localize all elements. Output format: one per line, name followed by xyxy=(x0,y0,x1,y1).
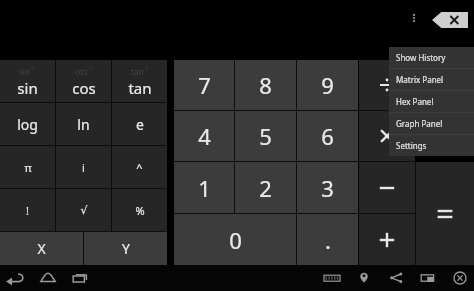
button[interactable]: Matrix Panel xyxy=(389,69,474,90)
button[interactable]: X xyxy=(0,232,83,265)
staticText: 4 xyxy=(198,121,211,151)
button[interactable]: 2 xyxy=(235,162,296,213)
button[interactable]: Settings xyxy=(389,135,474,156)
button[interactable]: Close xyxy=(450,268,470,288)
staticText: sin-1 xyxy=(19,65,36,77)
staticText: ! xyxy=(26,203,29,218)
button[interactable]: √ xyxy=(56,189,111,231)
button[interactable]: ! xyxy=(0,189,55,231)
staticText: log xyxy=(17,115,38,134)
button[interactable]: i xyxy=(56,146,111,188)
staticText: ^ xyxy=(136,160,143,175)
staticText: Matrix Panel xyxy=(396,74,444,85)
staticText: 8 xyxy=(259,70,272,100)
button[interactable]: Plus xyxy=(359,214,415,265)
button[interactable]: sin-1 xyxy=(0,60,55,102)
staticText: tan xyxy=(128,78,152,98)
button[interactable]: Divide xyxy=(359,60,415,110)
button[interactable]: π xyxy=(0,146,55,188)
button[interactable]: e xyxy=(112,103,167,145)
button[interactable]: 7 xyxy=(174,60,234,110)
button[interactable]: Back xyxy=(6,268,26,288)
staticText: Y xyxy=(122,239,130,258)
button[interactable]: Recent apps xyxy=(70,268,90,288)
button[interactable]: Graph Panel xyxy=(389,113,474,134)
button[interactable]: Keyboard xyxy=(322,268,342,288)
button[interactable]: ln xyxy=(56,103,111,145)
button[interactable]: 0 xyxy=(174,214,296,265)
staticText: Graph Panel xyxy=(396,118,443,129)
button[interactable]: log xyxy=(0,103,55,145)
staticText: 3 xyxy=(321,173,334,203)
button[interactable]: 9 xyxy=(297,60,358,110)
button[interactable]: 4 xyxy=(174,111,234,161)
staticText: tan-1 xyxy=(131,65,149,77)
staticText: . xyxy=(325,225,331,255)
button[interactable]: Share xyxy=(386,268,406,288)
staticText: π xyxy=(24,160,32,175)
button[interactable]: Minus xyxy=(359,162,415,213)
staticText: % xyxy=(135,203,145,218)
button[interactable]: Cast screen xyxy=(418,268,438,288)
button[interactable]: Show History xyxy=(389,47,474,68)
button[interactable]: More options xyxy=(404,8,424,28)
button[interactable]: 3 xyxy=(297,162,358,213)
staticText: ln xyxy=(77,115,90,134)
button[interactable]: Home xyxy=(38,268,58,288)
staticText: Settings xyxy=(396,140,427,151)
button[interactable]: 1 xyxy=(174,162,234,213)
button[interactable]: Y xyxy=(84,232,167,265)
button[interactable]: 5 xyxy=(235,111,296,161)
button[interactable]: Multiply xyxy=(359,111,415,161)
staticText: X xyxy=(37,239,46,258)
button[interactable]: Location xyxy=(354,268,374,288)
staticText: i xyxy=(82,160,85,175)
staticText: 2 xyxy=(259,173,272,203)
button[interactable]: 8 xyxy=(235,60,296,110)
button[interactable]: ^ xyxy=(112,146,167,188)
staticText: e xyxy=(136,115,144,134)
button[interactable]: 6 xyxy=(297,111,358,161)
button[interactable]: . xyxy=(297,214,358,265)
staticText: cos-1 xyxy=(75,65,93,77)
button[interactable]: tan-1 xyxy=(112,60,167,102)
staticText: 0 xyxy=(229,225,242,255)
button[interactable]: % xyxy=(112,189,167,231)
button[interactable]: Equals xyxy=(416,162,474,265)
staticText: Show History xyxy=(396,52,446,63)
staticText: 6 xyxy=(321,121,334,151)
staticText: cos xyxy=(72,78,96,98)
staticText: Hex Panel xyxy=(396,96,434,107)
button[interactable]: cos-1 xyxy=(56,60,111,102)
staticText: 1 xyxy=(198,173,211,203)
staticText: sin xyxy=(17,78,38,98)
staticText: 5 xyxy=(259,121,272,151)
button[interactable]: Backspace xyxy=(432,12,468,28)
button[interactable]: Hex Panel xyxy=(389,91,474,112)
staticText: √ xyxy=(80,204,88,217)
staticText: 7 xyxy=(198,70,211,100)
staticText: 9 xyxy=(321,70,334,100)
